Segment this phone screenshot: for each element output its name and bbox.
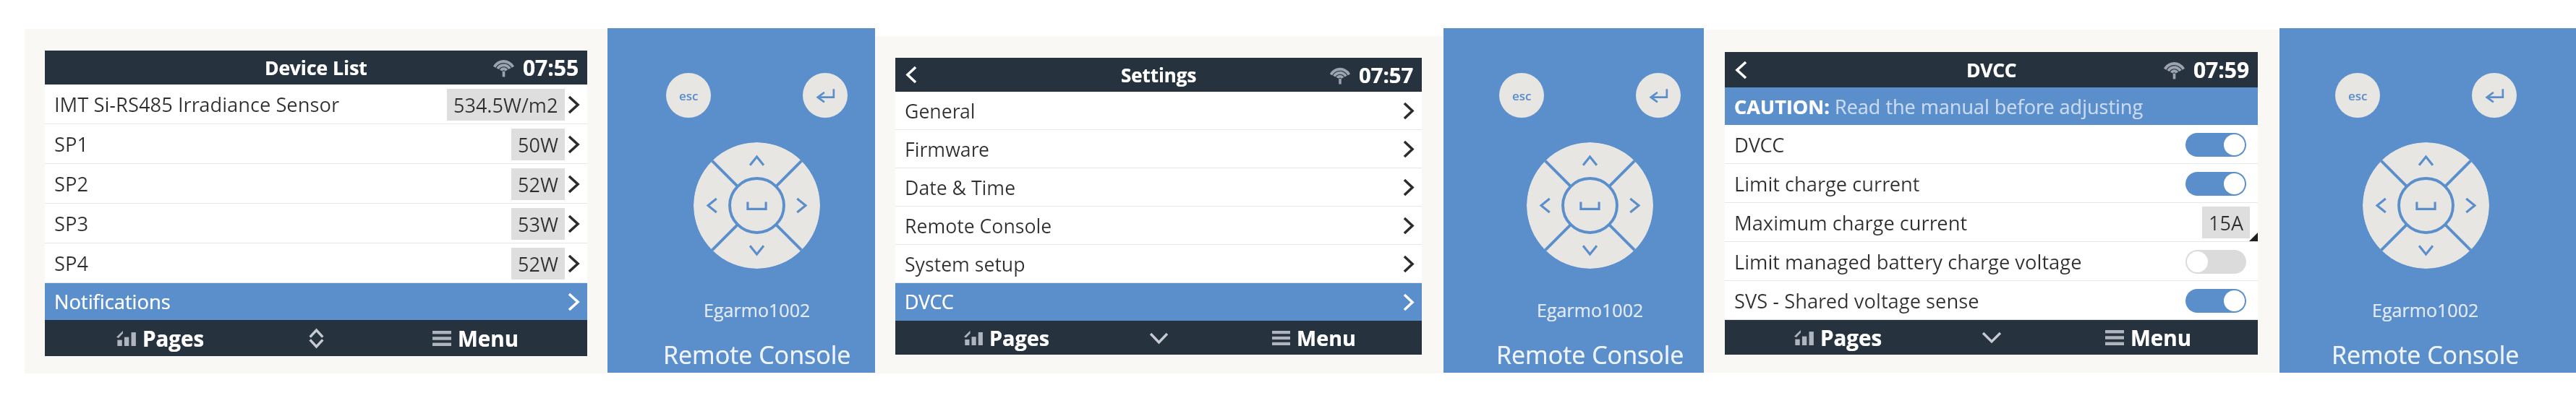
- button[interactable]: esc: [2335, 73, 2380, 118]
- staticText: Device List: [265, 55, 367, 81]
- staticText: 07:59: [2193, 55, 2250, 85]
- button[interactable]: Enter: [803, 73, 848, 118]
- staticText: Menu: [1297, 324, 1356, 352]
- button[interactable]: Menu: [2039, 320, 2258, 355]
- staticText: Egarmo1002: [704, 298, 811, 322]
- staticText: esc: [679, 87, 699, 104]
- staticText: SP4: [54, 250, 89, 277]
- staticText: Firmware: [905, 137, 989, 163]
- button[interactable]: Scroll up or down: [287, 320, 345, 356]
- staticText: 52W: [518, 171, 558, 198]
- staticText: General: [905, 98, 976, 124]
- staticText: 534.5W/m2: [453, 92, 558, 118]
- button[interactable]: Enter: [1636, 73, 1681, 118]
- staticText: esc: [1512, 87, 1532, 104]
- staticText: DVCC: [1966, 57, 2017, 83]
- staticText: Maximum charge current: [1734, 209, 1968, 236]
- staticText: System setup: [905, 251, 1025, 277]
- staticText: SP3: [54, 210, 89, 237]
- button[interactable]: DVCC: [895, 283, 1422, 321]
- button[interactable]: SP4: [45, 243, 587, 283]
- button[interactable]: Navigation pad: [1527, 142, 1653, 269]
- staticText: SP1: [54, 131, 89, 157]
- staticText: 52W: [518, 251, 558, 277]
- button[interactable]: Firmware: [895, 130, 1422, 168]
- staticText: Remote Console: [1496, 338, 1684, 371]
- staticText: Notifications: [54, 288, 171, 315]
- staticText: 53W: [518, 211, 558, 238]
- button[interactable]: esc: [666, 73, 711, 118]
- staticText: Egarmo1002: [2372, 298, 2479, 322]
- staticText: Pages: [989, 324, 1050, 352]
- button[interactable]: IMT Si-RS485 Irradiance Sensor: [45, 85, 587, 124]
- staticText: Settings: [1121, 62, 1197, 87]
- staticText: Remote Console: [905, 213, 1052, 239]
- button[interactable]: Maximum charge current: [1725, 203, 2258, 242]
- staticText: SP2: [54, 170, 89, 197]
- button[interactable]: CAUTION:: [1725, 87, 2258, 125]
- staticText: 15A: [2209, 209, 2243, 236]
- button[interactable]: Back: [895, 58, 928, 92]
- staticText: 50W: [518, 131, 558, 158]
- button[interactable]: SP2: [45, 164, 587, 204]
- button[interactable]: Remote Console: [895, 207, 1422, 245]
- staticText: 07:55: [523, 53, 579, 82]
- button[interactable]: Notifications: [45, 283, 587, 320]
- button[interactable]: Scroll down: [1963, 320, 2021, 355]
- button[interactable]: On: [2185, 289, 2246, 313]
- staticText: Date & Time: [905, 175, 1016, 201]
- button[interactable]: Date & Time: [895, 168, 1422, 207]
- staticText: DVCC: [1734, 131, 1785, 158]
- button[interactable]: Enter: [2472, 73, 2517, 118]
- staticText: Read the manual before adjusting: [1835, 93, 2144, 120]
- button[interactable]: Navigation pad: [2363, 142, 2489, 269]
- button[interactable]: SVS - Shared voltage sense: [1725, 281, 2258, 320]
- staticText: Egarmo1002: [1537, 298, 1644, 322]
- button[interactable]: Off: [2185, 250, 2246, 274]
- staticText: Pages: [1820, 323, 1882, 352]
- staticText: CAUTION:: [1734, 93, 1835, 120]
- button[interactable]: System setup: [895, 245, 1422, 283]
- staticText: Limit charge current: [1734, 170, 1920, 197]
- button[interactable]: Limit managed battery charge voltage: [1725, 242, 2258, 281]
- button[interactable]: SP1: [45, 124, 587, 164]
- button[interactable]: esc: [1499, 73, 1544, 118]
- button[interactable]: Pages: [45, 320, 276, 356]
- button[interactable]: DVCC: [1725, 125, 2258, 164]
- button[interactable]: Pages: [1725, 320, 1951, 355]
- button[interactable]: SP3: [45, 204, 587, 243]
- staticText: Pages: [142, 324, 205, 352]
- staticText: Limit managed battery charge voltage: [1734, 248, 2082, 275]
- staticText: esc: [2348, 87, 2368, 104]
- button[interactable]: General: [895, 92, 1422, 130]
- staticText: DVCC: [905, 289, 954, 315]
- button[interactable]: Pages: [895, 321, 1119, 355]
- staticText: Menu: [2131, 323, 2192, 352]
- button[interactable]: Menu: [1206, 321, 1422, 355]
- staticText: 07:57: [1359, 61, 1414, 90]
- button[interactable]: Scroll down: [1130, 321, 1187, 355]
- button[interactable]: On: [2185, 172, 2246, 196]
- button[interactable]: Navigation pad: [694, 142, 820, 269]
- button[interactable]: Limit charge current: [1725, 164, 2258, 203]
- staticText: IMT Si-RS485 Irradiance Sensor: [54, 91, 340, 118]
- button[interactable]: Back: [1725, 52, 1758, 87]
- button[interactable]: On: [2185, 133, 2246, 157]
- staticText: Menu: [458, 324, 519, 352]
- staticText: Remote Console: [2332, 338, 2520, 371]
- staticText: Remote Console: [663, 338, 851, 371]
- staticText: SVS - Shared voltage sense: [1734, 287, 1979, 314]
- button[interactable]: Menu: [364, 320, 587, 356]
